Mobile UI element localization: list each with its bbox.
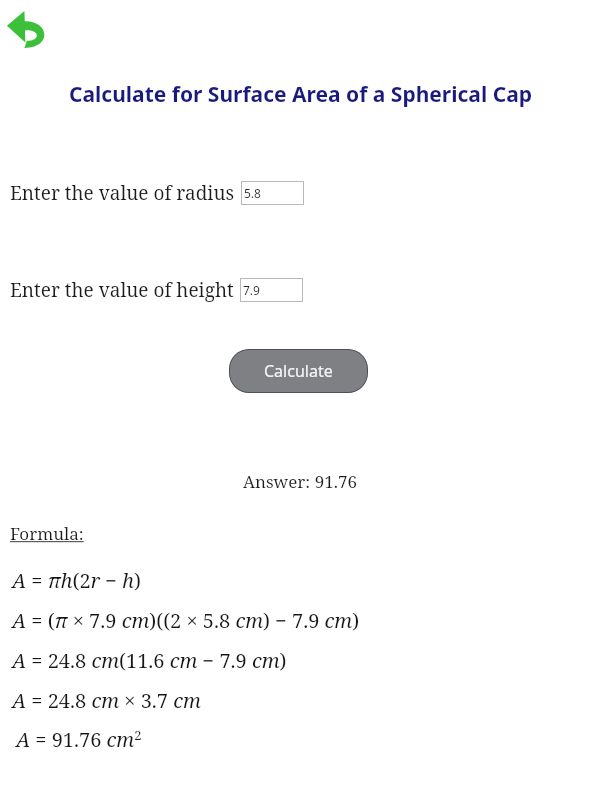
button[interactable]: Calculate — [229, 349, 368, 393]
staticText: Answer: 91.76 — [243, 470, 357, 493]
staticText: 5.8 — [244, 185, 261, 201]
staticText: A = 24.8 cm(11.6 cm − 7.9 cm) — [12, 647, 287, 674]
staticText: Calculate for Surface Area of a Spherica… — [69, 80, 532, 109]
staticText: Enter the value of radius — [10, 180, 235, 206]
staticText: 7.9 — [243, 282, 260, 298]
staticText: A = (π × 7.9 cm)((2 × 5.8 cm) − 7.9 cm) — [12, 607, 360, 634]
staticText: A = 24.8 cm × 3.7 cm — [12, 687, 201, 714]
button[interactable]: 7.9 — [240, 278, 303, 302]
staticText: A = 91.76 cm2 — [16, 726, 142, 753]
staticText: A = πh(2r − h) — [12, 567, 141, 594]
button[interactable]: Back — [6, 9, 52, 51]
button[interactable]: 5.8 — [241, 181, 304, 205]
staticText: Formula: — [10, 522, 84, 545]
staticText: Calculate — [264, 360, 333, 382]
staticText: Enter the value of height — [10, 277, 234, 303]
